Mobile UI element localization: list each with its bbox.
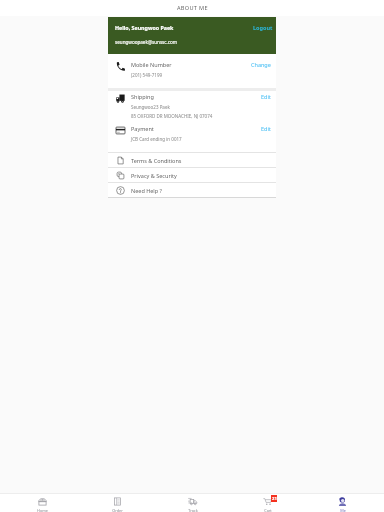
staticText: 21 (272, 496, 277, 502)
staticText: ABOUT ME (177, 4, 208, 12)
staticText: JCB Card ending in 0017 (131, 136, 182, 142)
button[interactable]: Shipping (108, 91, 276, 121)
staticText: seungwoopaek@sunssc.com (115, 39, 178, 45)
button[interactable]: Me (305, 494, 380, 512)
button[interactable]: Terms & Conditions (108, 153, 276, 167)
button[interactable]: Edit (261, 93, 271, 100)
button[interactable]: Mobile Number (108, 54, 276, 88)
button[interactable]: Edit (261, 125, 271, 132)
staticText: Logout (253, 24, 273, 31)
button[interactable]: Privacy & Security (108, 168, 276, 182)
button[interactable]: Logout (253, 24, 273, 31)
button[interactable]: Cart (230, 494, 305, 512)
staticText: Need Help ? (131, 187, 162, 194)
staticText: Shipping (131, 93, 154, 100)
button[interactable]: Track (155, 494, 230, 512)
button[interactable]: Payment (108, 121, 276, 152)
button[interactable]: Home (4, 494, 80, 512)
staticText: Order (112, 508, 123, 512)
staticText: Terms & Conditions (131, 157, 182, 164)
staticText: Cart (264, 508, 272, 512)
staticText: Mobile Number (131, 61, 172, 68)
staticText: Payment (131, 125, 154, 132)
staticText: Seungwoo23 Paek (131, 104, 170, 110)
button[interactable]: Need Help ? (108, 183, 276, 197)
staticText: (201) 549-7199 (131, 72, 163, 78)
staticText: Change (251, 61, 271, 68)
staticText: 85 OXFORD DR MOONACHIE, NJ 07074 (131, 113, 213, 119)
button[interactable]: Change (251, 61, 271, 68)
button[interactable]: Order (80, 494, 155, 512)
staticText: Hello, Seungwoo Paek (115, 24, 174, 31)
staticText: Home (37, 508, 48, 512)
staticText: Me (340, 508, 346, 512)
staticText: Track (188, 508, 198, 512)
staticText: Edit (261, 93, 271, 100)
staticText: Edit (261, 125, 271, 132)
staticText: Privacy & Security (131, 172, 177, 179)
